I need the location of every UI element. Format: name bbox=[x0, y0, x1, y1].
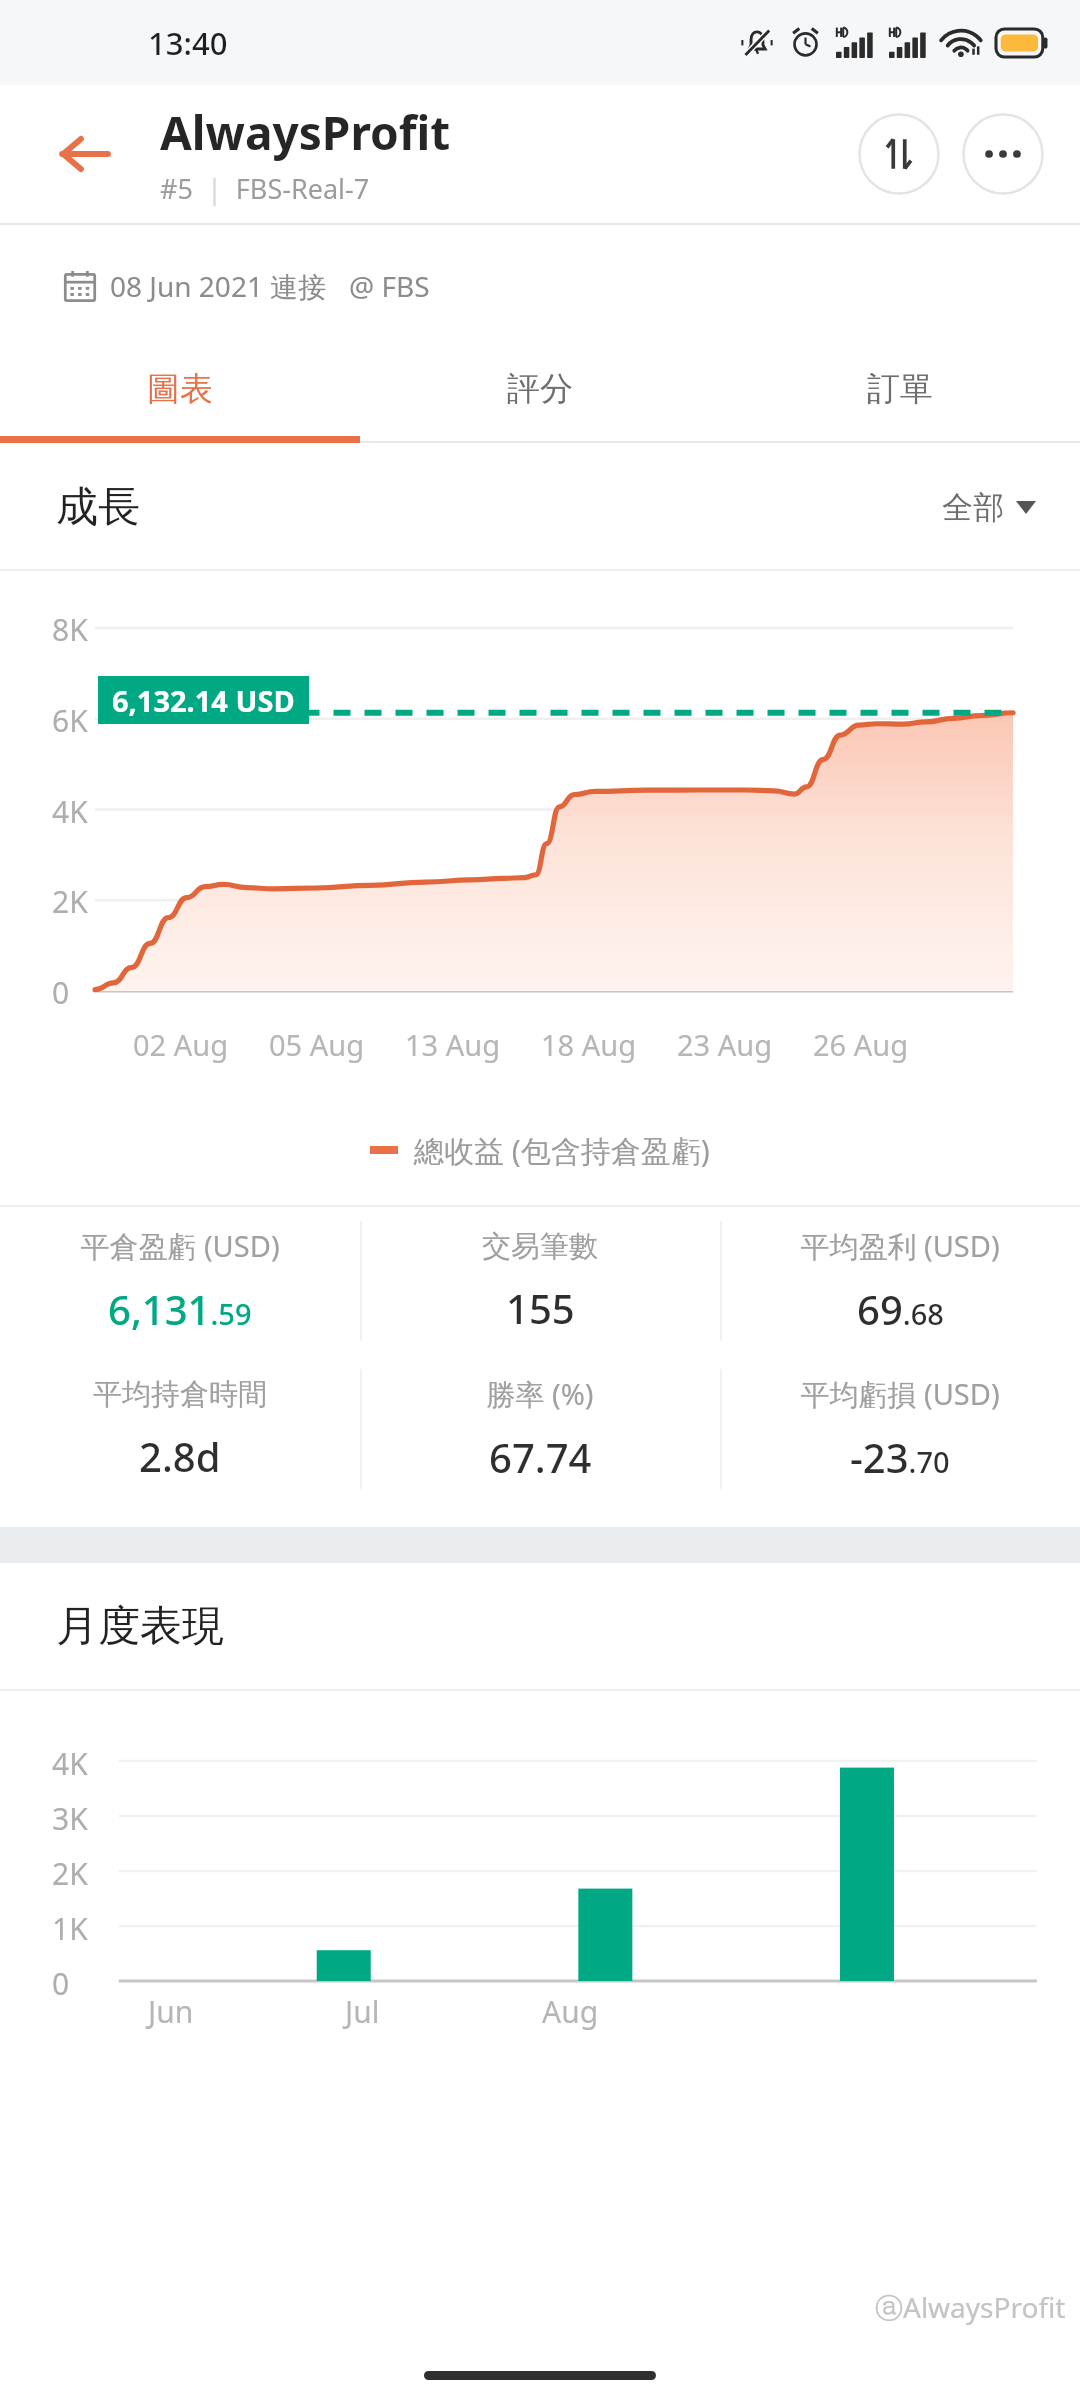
staticText: 08 Jun 2021 連接 bbox=[110, 267, 327, 305]
staticText: Aug bbox=[542, 1991, 599, 2032]
staticText: 0 bbox=[52, 1963, 70, 2004]
button[interactable]: 圖表 bbox=[0, 347, 360, 443]
staticText: 4K bbox=[52, 1743, 88, 1784]
staticText: 平倉盈虧 (USD) bbox=[80, 1226, 280, 1266]
staticText: 13:40 bbox=[148, 22, 228, 64]
staticText: 67.74 bbox=[489, 1430, 592, 1484]
button[interactable]: More options bbox=[962, 113, 1044, 195]
staticText: 4K bbox=[52, 791, 88, 832]
button[interactable]: Switch account bbox=[858, 113, 940, 195]
staticText: 13 Aug bbox=[405, 1025, 501, 1064]
staticText: 8K bbox=[52, 609, 88, 650]
button[interactable]: 評分 bbox=[360, 347, 720, 443]
staticText: 2.8d bbox=[139, 1429, 221, 1483]
staticText: ⓐAlwaysProfit bbox=[875, 2288, 1066, 2326]
button[interactable]: 勝率 (%) bbox=[360, 1355, 720, 1503]
staticText: #5 | FBS-Real-7 bbox=[160, 170, 370, 207]
button[interactable]: 平均虧損 (USD) bbox=[720, 1355, 1080, 1503]
staticText: AlwaysProfit bbox=[160, 101, 451, 164]
button[interactable]: 平均持倉時間 bbox=[0, 1355, 360, 1503]
button[interactable]: 平倉盈虧 (USD) bbox=[0, 1207, 360, 1355]
staticText: @ FBS bbox=[349, 267, 430, 305]
button[interactable]: 全部 bbox=[942, 488, 1036, 527]
staticText: -23.70 bbox=[850, 1430, 950, 1484]
staticText: Jul bbox=[345, 1991, 380, 2032]
staticText: 2K bbox=[52, 1853, 88, 1894]
staticText: 月度表現 bbox=[56, 1600, 224, 1653]
staticText: 155 bbox=[506, 1281, 575, 1335]
staticText: 6K bbox=[52, 700, 88, 741]
staticText: 6,132.14 USD bbox=[112, 681, 295, 720]
staticText: 訂單 bbox=[867, 368, 933, 410]
staticText: 02 Aug bbox=[133, 1025, 229, 1064]
staticText: 平均虧損 (USD) bbox=[800, 1374, 1000, 1414]
staticText: 圖表 bbox=[147, 368, 213, 410]
staticText: 成長 bbox=[56, 481, 140, 534]
staticText: 05 Aug bbox=[269, 1025, 365, 1064]
staticText: 26 Aug bbox=[813, 1025, 909, 1064]
button[interactable]: Back bbox=[42, 112, 126, 196]
button[interactable]: 平均盈利 (USD) bbox=[720, 1207, 1080, 1355]
staticText: 評分 bbox=[507, 368, 573, 410]
staticText: 平均持倉時間 bbox=[93, 1376, 267, 1413]
staticText: 勝率 (%) bbox=[486, 1374, 594, 1414]
staticText: 0 bbox=[52, 972, 70, 1013]
staticText: 69.68 bbox=[857, 1282, 944, 1336]
staticText: 1K bbox=[52, 1908, 88, 1949]
staticText: 交易筆數 bbox=[482, 1228, 598, 1265]
button[interactable]: 訂單 bbox=[720, 347, 1080, 443]
button[interactable]: 交易筆數 bbox=[360, 1207, 720, 1355]
staticText: 總收益 (包含持倉盈虧) bbox=[414, 1130, 710, 1171]
staticText: 平均盈利 (USD) bbox=[800, 1226, 1000, 1266]
staticText: Jun bbox=[148, 1991, 194, 2032]
staticText: 23 Aug bbox=[677, 1025, 773, 1064]
staticText: 6,131.59 bbox=[108, 1282, 252, 1336]
staticText: 3K bbox=[52, 1798, 88, 1839]
staticText: 2K bbox=[52, 881, 88, 922]
staticText: 全部 bbox=[942, 488, 1004, 527]
staticText: 18 Aug bbox=[541, 1025, 637, 1064]
